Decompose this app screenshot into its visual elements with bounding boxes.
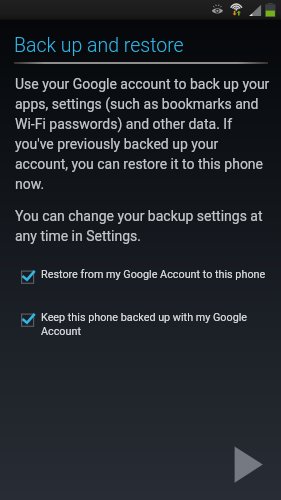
button[interactable]: Restore from my Google Account to this p…: [16, 266, 274, 281]
staticText: Keep this phone backed up with my Google…: [41, 311, 274, 338]
staticText: Restore from my Google Account to this p…: [41, 268, 274, 281]
staticText: You can change your backup settings at a…: [15, 208, 271, 244]
staticText: Use your Google account to back up your …: [15, 76, 271, 192]
staticText: Back up and restore: [14, 34, 184, 57]
button[interactable]: Next: [226, 438, 272, 492]
button[interactable]: Keep this phone backed up with my Google…: [16, 309, 274, 336]
